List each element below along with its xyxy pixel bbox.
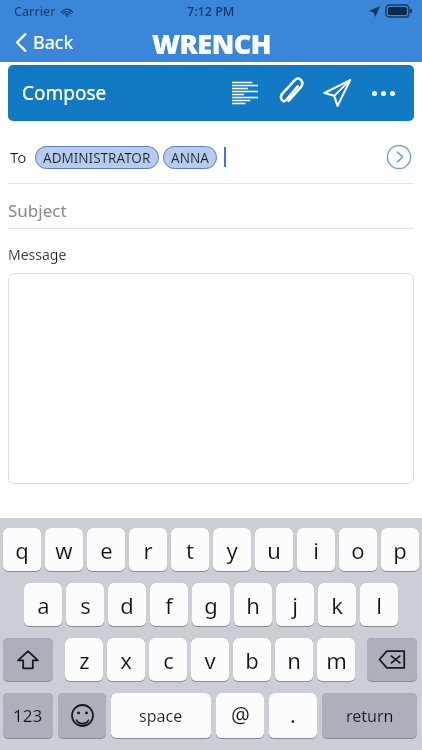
staticText: t (186, 535, 194, 565)
staticText: 7:12 PM (187, 3, 235, 20)
staticText: ANNA (171, 149, 209, 167)
staticText: x (120, 645, 132, 675)
button[interactable]: x (107, 638, 145, 681)
button[interactable]: f (150, 583, 188, 626)
staticText: i (313, 535, 319, 565)
button[interactable]: More options (360, 70, 406, 116)
staticText: Subject (8, 199, 67, 222)
button[interactable]: t (171, 528, 209, 571)
button[interactable]: i (297, 528, 335, 571)
button[interactable]: a (24, 583, 62, 626)
staticText: d (120, 590, 134, 620)
button[interactable]: d (108, 583, 146, 626)
button[interactable]: Send (314, 70, 360, 116)
button[interactable]: k (318, 583, 356, 626)
staticText: e (100, 535, 113, 565)
button[interactable]: 123 (3, 693, 53, 738)
button[interactable]: s (66, 583, 104, 626)
staticText: z (79, 645, 90, 675)
staticText: v (204, 645, 216, 675)
button[interactable]: @ (216, 693, 264, 738)
button[interactable]: Backspace (367, 638, 417, 681)
button[interactable]: g (192, 583, 230, 626)
button[interactable]: return (322, 693, 417, 738)
staticText: l (376, 590, 382, 620)
button[interactable]: v (191, 638, 229, 681)
staticText: g (204, 590, 218, 620)
button[interactable]: y (213, 528, 251, 571)
staticText: m (326, 645, 347, 675)
staticText: j (292, 590, 298, 620)
staticText: o (351, 535, 365, 565)
button[interactable]: l (360, 583, 398, 626)
button[interactable]: Attach file (268, 70, 314, 116)
staticText: p (393, 535, 407, 565)
button[interactable]: z (65, 638, 103, 681)
button[interactable]: w (45, 528, 83, 571)
button[interactable]: u (255, 528, 293, 571)
staticText: b (245, 645, 259, 675)
staticText: space (139, 705, 183, 727)
staticText: u (267, 535, 281, 565)
staticText: Back (33, 30, 74, 55)
staticText: r (143, 535, 153, 565)
button[interactable]: r (129, 528, 167, 571)
staticText: Compose (22, 80, 107, 106)
button[interactable]: Add recipient (384, 142, 414, 172)
button[interactable]: Shift (3, 638, 53, 681)
button[interactable]: Format text (222, 70, 268, 116)
staticText: Message (8, 245, 67, 264)
button[interactable] (8, 273, 414, 484)
button[interactable]: q (3, 528, 41, 571)
staticText: n (287, 645, 301, 675)
staticText: w (55, 535, 73, 565)
button[interactable]: ADMINISTRATOR (35, 146, 159, 169)
staticText: return (346, 705, 394, 727)
button[interactable]: e (87, 528, 125, 571)
button[interactable]: j (276, 583, 314, 626)
button[interactable]: Subject (0, 192, 422, 228)
button[interactable]: ANNA (163, 146, 217, 169)
staticText: c (163, 645, 174, 675)
staticText: f (165, 590, 173, 620)
staticText: To (10, 147, 27, 167)
staticText: y (226, 535, 238, 565)
button[interactable]: Emoji (58, 693, 106, 738)
button[interactable]: b (233, 638, 271, 681)
button[interactable]: . (269, 693, 317, 738)
button[interactable]: m (317, 638, 355, 681)
staticText: k (331, 590, 343, 620)
button[interactable]: o (339, 528, 377, 571)
staticText: h (246, 590, 260, 620)
button[interactable]: n (275, 638, 313, 681)
staticText: WRENCH (152, 25, 271, 62)
staticText: 123 (13, 704, 43, 727)
staticText: s (80, 590, 91, 620)
button[interactable]: h (234, 583, 272, 626)
staticText: . (290, 701, 296, 730)
staticText: Carrier (14, 3, 56, 20)
staticText: q (15, 535, 29, 565)
button[interactable]: c (149, 638, 187, 681)
staticText: ADMINISTRATOR (43, 149, 151, 167)
button[interactable]: Back (10, 26, 80, 59)
button[interactable]: p (381, 528, 419, 571)
staticText: a (37, 590, 50, 620)
staticText: @ (231, 701, 250, 730)
button[interactable]: space (111, 693, 211, 738)
